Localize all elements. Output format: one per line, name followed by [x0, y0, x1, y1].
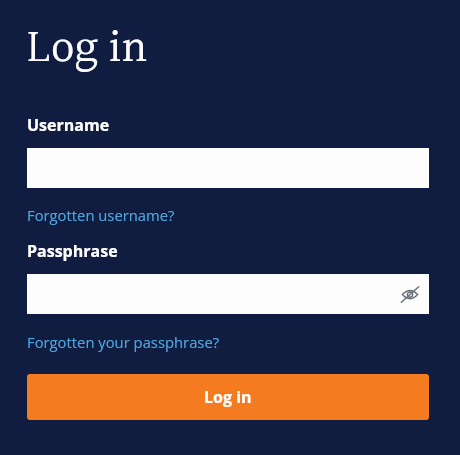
staticText: Log in: [204, 386, 252, 408]
staticText: Passphrase: [27, 240, 118, 262]
button[interactable]: Forgotten username?: [27, 205, 175, 225]
button[interactable]: Forgotten your passphrase?: [27, 332, 220, 352]
button[interactable]: Show passphrase: [27, 274, 429, 314]
button[interactable]: Log in: [27, 374, 429, 420]
staticText: Log in: [27, 13, 148, 85]
button[interactable]: Show passphrase: [398, 282, 422, 306]
staticText: Username: [27, 114, 110, 136]
